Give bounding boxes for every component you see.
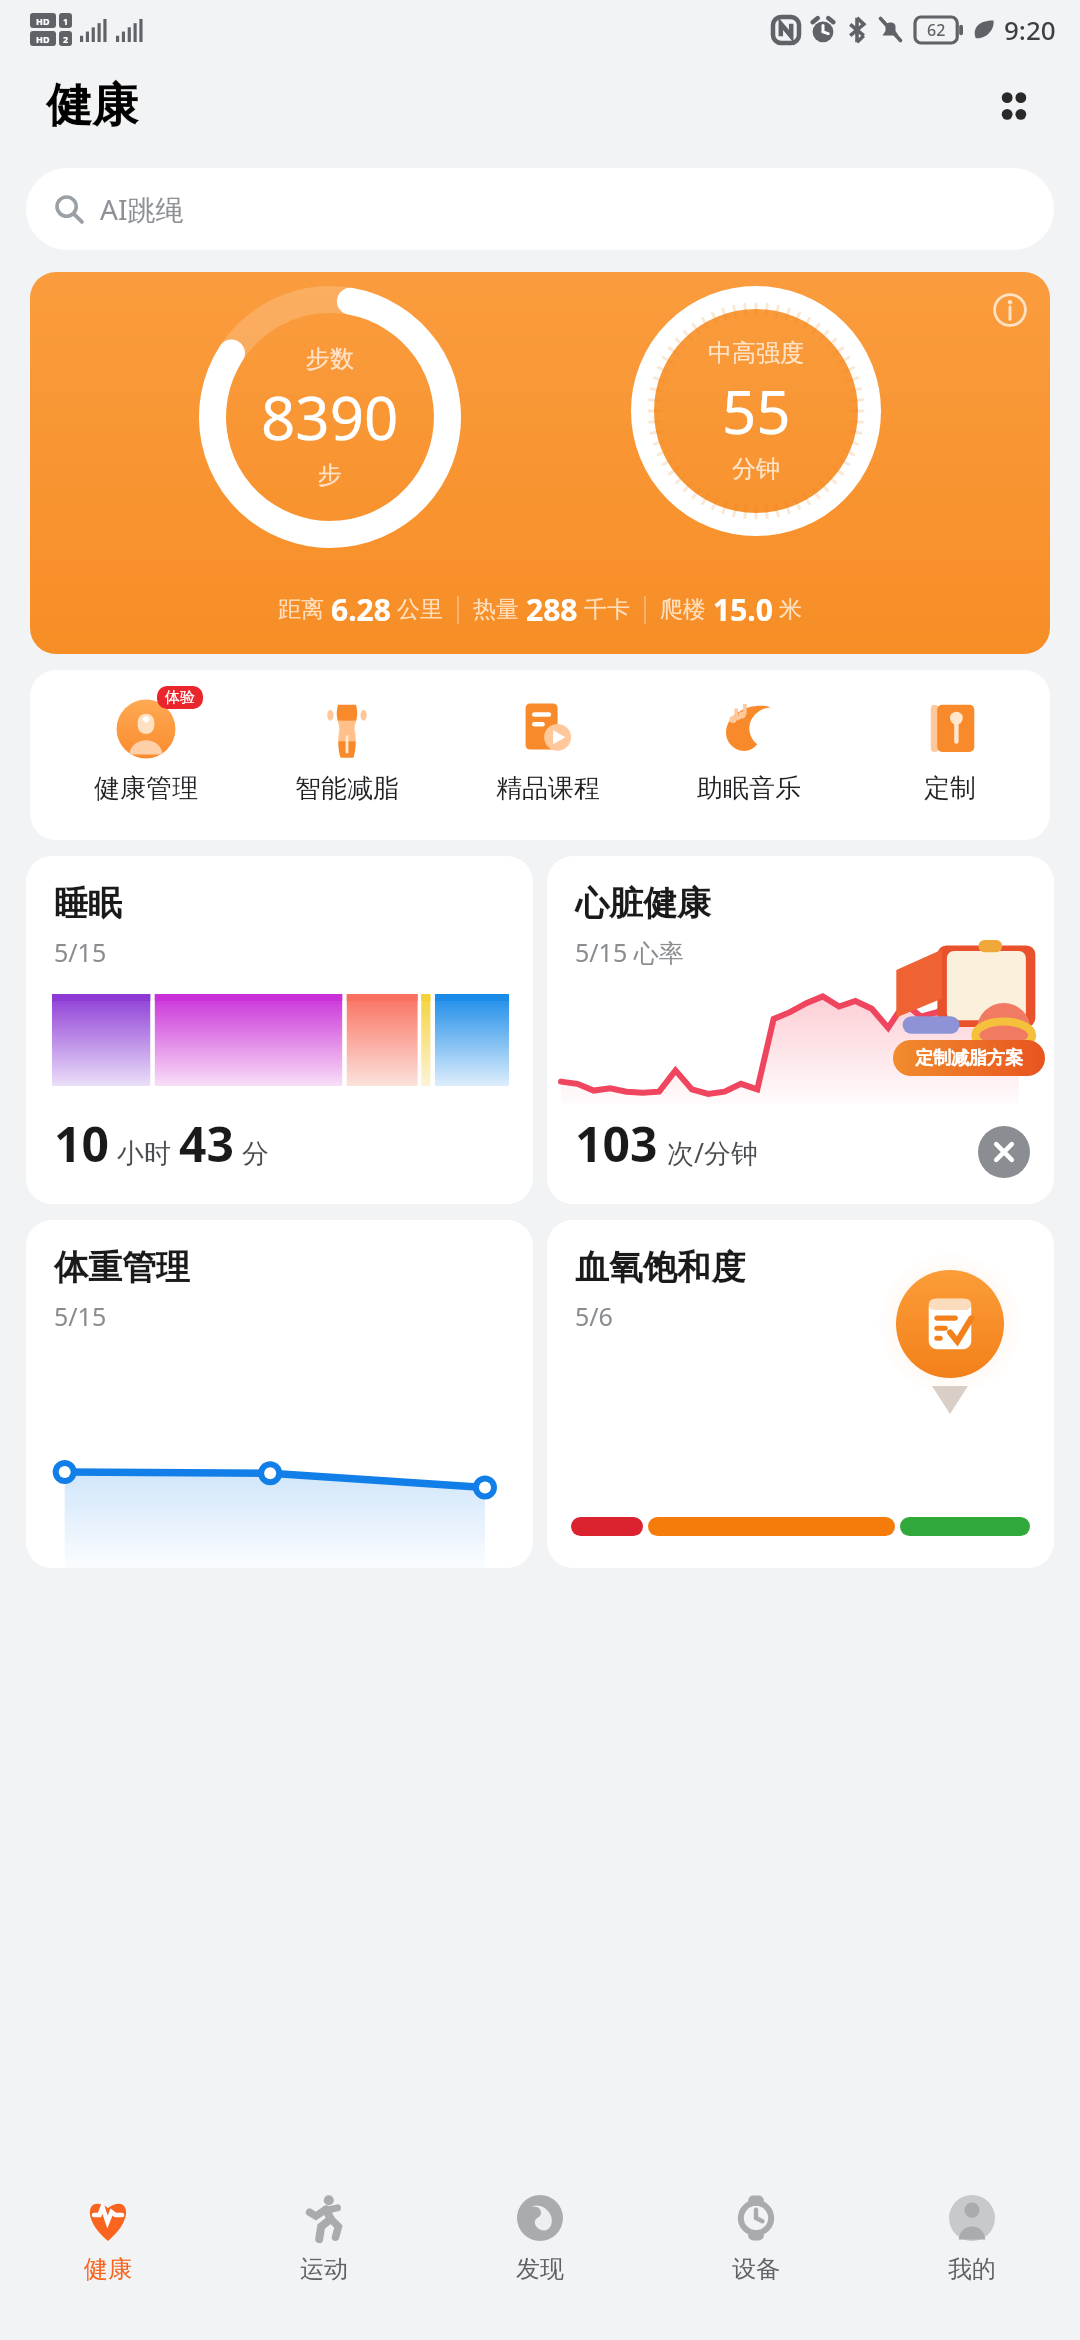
staticText: 我的 <box>948 2254 996 2284</box>
button[interactable]: Info <box>30 272 1050 654</box>
staticText: 米 <box>779 595 802 624</box>
staticText: 9:20 <box>1004 12 1056 47</box>
staticText: 5/15 <box>54 935 107 969</box>
button[interactable]: 心脏健康 <box>547 856 1054 1204</box>
staticText: 分钟 <box>732 454 780 484</box>
staticText: 爬楼 <box>660 595 706 624</box>
staticText: 运动 <box>300 2254 348 2284</box>
staticText: 分 <box>242 1137 269 1171</box>
staticText: 15.0 <box>713 589 773 630</box>
button[interactable]: Info <box>984 284 1036 336</box>
staticText: 健康 <box>84 2254 132 2284</box>
staticText: 103 <box>575 1111 658 1176</box>
staticText: 5/15 <box>54 1299 107 1333</box>
staticText: 智能减脂 <box>295 772 399 805</box>
staticText: 心脏健康 <box>575 882 711 925</box>
staticText: 健康管理 <box>94 772 198 805</box>
button[interactable]: 体验 <box>46 692 246 805</box>
staticText: 助眠音乐 <box>697 772 801 805</box>
staticText: 55 <box>722 370 791 452</box>
staticText: 62 <box>927 19 946 41</box>
staticText: 健康 <box>46 77 138 135</box>
button[interactable]: 健康 <box>0 2188 216 2340</box>
staticText: 定制 <box>924 772 976 805</box>
button[interactable]: 定制 <box>849 692 1050 805</box>
button[interactable]: AI跳绳 <box>26 168 1054 250</box>
button[interactable]: 发现 <box>432 2188 648 2340</box>
button[interactable]: 血氧饱和度 <box>547 1220 1054 1568</box>
staticText: 精品课程 <box>496 772 600 805</box>
staticText: 热量 <box>473 595 519 624</box>
button[interactable]: 设备 <box>648 2188 864 2340</box>
button[interactable]: More options <box>978 70 1050 142</box>
staticText: 43 <box>179 1111 234 1176</box>
staticText: 5/15 心率 <box>575 935 684 969</box>
staticText: 小时 <box>117 1137 171 1171</box>
staticText: 5/6 <box>575 1299 613 1333</box>
staticText: 发现 <box>516 2254 564 2284</box>
button[interactable]: 智能减脂 <box>246 692 447 805</box>
staticText: HD <box>36 33 50 45</box>
button[interactable]: 体重管理 <box>26 1220 533 1568</box>
button[interactable]: 运动 <box>216 2188 432 2340</box>
staticText: 设备 <box>732 2254 780 2284</box>
staticText: HD <box>36 15 50 27</box>
button[interactable]: 精品课程 <box>447 692 648 805</box>
staticText: 睡眠 <box>54 882 122 925</box>
staticText: 距离 <box>278 595 324 624</box>
staticText: 千卡 <box>584 595 630 624</box>
staticText: 步 <box>318 460 342 490</box>
staticText: 定制减脂方案 <box>915 1047 1023 1070</box>
staticText: 步数 <box>306 344 354 374</box>
button[interactable]: 助眠音乐 <box>648 692 849 805</box>
staticText: 次/分钟 <box>667 1134 759 1171</box>
staticText: 288 <box>526 589 578 630</box>
staticText: 血氧饱和度 <box>575 1246 745 1289</box>
staticText: 6.28 <box>331 589 391 630</box>
button[interactable]: 我的 <box>864 2188 1080 2340</box>
button[interactable]: 睡眠 <box>26 856 533 1204</box>
staticText: 2 <box>63 33 69 45</box>
staticText: 公里 <box>397 595 443 624</box>
staticText: 中高强度 <box>708 338 804 368</box>
staticText: 体重管理 <box>54 1246 190 1289</box>
staticText: AI跳绳 <box>100 190 184 228</box>
staticText: 体验 <box>165 688 195 707</box>
staticText: 1 <box>63 15 69 27</box>
button[interactable]: Close advertisement <box>978 1126 1030 1178</box>
staticText: 10 <box>54 1111 109 1176</box>
staticText: 8390 <box>261 376 399 458</box>
